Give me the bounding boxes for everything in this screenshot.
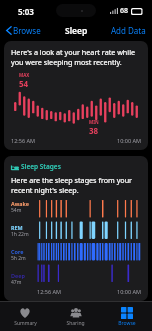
staticText: 68: [120, 6, 129, 16]
button[interactable]: Here's a look at your heart rate while y…: [4, 41, 148, 150]
staticText: Sleep: [65, 25, 88, 37]
button[interactable]: Add Data: [111, 25, 146, 36]
staticText: MAX: [19, 72, 30, 78]
staticText: Sleep Stages: [21, 162, 61, 171]
staticText: 1h 22m: [11, 231, 29, 238]
staticText: Summary: [14, 320, 37, 327]
button[interactable]: Browse: [101, 302, 152, 331]
staticText: 12:56 AM: [11, 137, 35, 144]
staticText: 5:03: [18, 6, 34, 17]
staticText: Sharing: [66, 320, 85, 327]
staticText: 54: [19, 78, 29, 89]
staticText: MIN: [89, 119, 99, 125]
staticText: Browse: [13, 25, 41, 36]
staticText: 38: [89, 125, 99, 136]
staticText: 5h 2m: [11, 255, 26, 262]
staticText: Deep: [11, 272, 25, 279]
button[interactable]: Sleep Stages: [4, 156, 148, 301]
button[interactable]: Browse: [5, 25, 42, 36]
staticText: 47m: [11, 279, 22, 286]
button[interactable]: Summary: [0, 302, 50, 331]
staticText: 10:00 AM: [117, 288, 141, 295]
staticText: Here are the sleep stages from your rece…: [11, 175, 141, 195]
staticText: Core: [11, 248, 24, 255]
staticText: 12:56 AM: [37, 288, 61, 295]
staticText: 10:00 AM: [117, 137, 141, 144]
staticText: Browse: [118, 320, 136, 327]
staticText: Here's a look at your heart rate while y…: [11, 47, 141, 67]
staticText: 54m: [11, 207, 22, 214]
button[interactable]: Sharing: [50, 302, 101, 331]
staticText: REM: [11, 224, 23, 231]
staticText: Awake: [11, 200, 29, 207]
